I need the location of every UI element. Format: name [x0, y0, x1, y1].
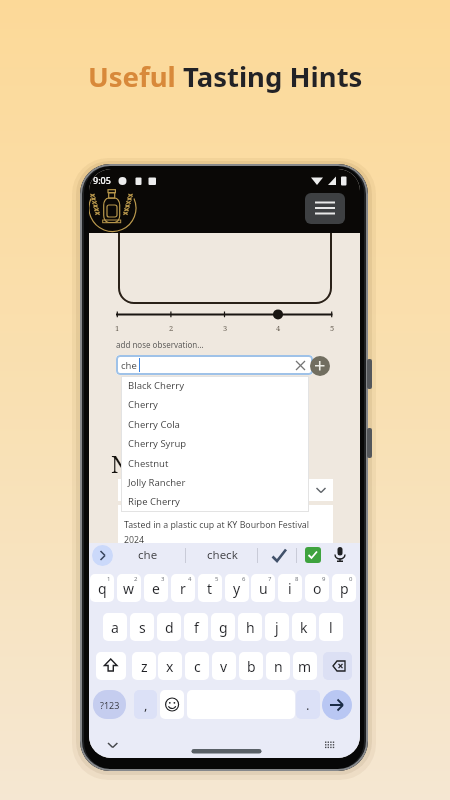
- button[interactable]: e: [144, 574, 168, 602]
- staticText: Jolly Rancher: [128, 476, 186, 489]
- staticText: 1: [115, 323, 120, 333]
- button[interactable]: i: [278, 574, 302, 602]
- button[interactable]: f: [184, 613, 208, 641]
- staticText: 0: [349, 575, 353, 583]
- button[interactable]: r: [171, 574, 195, 602]
- staticText: h: [246, 618, 255, 637]
- button[interactable]: g: [211, 613, 235, 641]
- staticText: .: [306, 696, 310, 714]
- button[interactable]: s: [130, 613, 154, 641]
- staticText: Chestnut: [128, 457, 169, 470]
- button[interactable]: Chestnut: [121, 454, 309, 473]
- button[interactable]: y: [225, 574, 249, 602]
- button[interactable]: Jolly Rancher: [121, 473, 309, 492]
- button[interactable]: c: [185, 652, 209, 680]
- staticText: v: [220, 657, 228, 676]
- staticText: k: [300, 618, 308, 637]
- button[interactable]: [160, 690, 184, 719]
- button[interactable]: Ripe Cherry: [121, 492, 309, 511]
- button[interactable]: che: [116, 355, 313, 375]
- staticText: l: [329, 618, 333, 637]
- button[interactable]: [322, 690, 352, 720]
- button[interactable]: .: [296, 690, 320, 719]
- staticText: 4: [188, 575, 192, 583]
- button[interactable]: q: [90, 574, 114, 602]
- staticText: i: [288, 579, 292, 598]
- staticText: m: [298, 657, 312, 676]
- button[interactable]: [92, 545, 113, 566]
- button[interactable]: v: [212, 652, 236, 680]
- staticText: Tasted in a plastic cup at KY Bourbon Fe…: [124, 519, 310, 531]
- button[interactable]: Black Cherry: [121, 376, 309, 395]
- button[interactable]: a: [103, 613, 127, 641]
- staticText: 4: [276, 323, 281, 333]
- staticText: 2024: [124, 534, 145, 546]
- button[interactable]: Cherry Syrup: [121, 434, 309, 453]
- staticText: 1: [107, 575, 111, 583]
- button[interactable]: Cherry Cola: [121, 415, 309, 434]
- staticText: w: [123, 579, 135, 598]
- button[interactable]: [323, 652, 352, 680]
- staticText: Black Cherry: [128, 379, 184, 392]
- button[interactable]: ,: [134, 690, 157, 719]
- staticText: che: [138, 547, 158, 563]
- staticText: c: [194, 657, 201, 676]
- staticText: ,: [144, 696, 148, 714]
- button[interactable]: x: [158, 652, 182, 680]
- staticText: p: [340, 579, 349, 598]
- staticText: N: [111, 448, 129, 474]
- button[interactable]: b: [239, 652, 263, 680]
- staticText: Cherry Syrup: [128, 437, 187, 450]
- button[interactable]: p: [332, 574, 356, 602]
- button[interactable]: j: [265, 613, 289, 641]
- staticText: check: [207, 547, 238, 563]
- staticText: Cherry Cola: [128, 418, 180, 431]
- staticText: q: [98, 579, 107, 598]
- button[interactable]: ?123: [93, 690, 126, 719]
- button[interactable]: o: [305, 574, 329, 602]
- staticText: 3: [161, 575, 165, 583]
- staticText: x: [166, 657, 174, 676]
- staticText: 2: [134, 575, 138, 583]
- button[interactable]: [305, 193, 345, 224]
- staticText: n: [274, 657, 283, 676]
- staticText: Useful: [88, 58, 183, 95]
- button[interactable]: [118, 479, 333, 501]
- staticText: add nose observation...: [116, 339, 204, 350]
- staticText: 6: [242, 575, 246, 583]
- button[interactable]: u: [251, 574, 275, 602]
- staticText: Cherry: [128, 398, 158, 411]
- staticText: s: [139, 618, 146, 637]
- staticText: o: [313, 579, 322, 598]
- button[interactable]: m: [293, 652, 317, 680]
- button[interactable]: Cherry: [121, 395, 309, 414]
- button[interactable]: [96, 652, 126, 680]
- button[interactable]: t: [198, 574, 222, 602]
- staticText: 8: [295, 575, 299, 583]
- button[interactable]: h: [238, 613, 262, 641]
- button[interactable]: d: [157, 613, 181, 641]
- button[interactable]: k: [292, 613, 316, 641]
- staticText: 5: [215, 575, 219, 583]
- staticText: t: [207, 579, 213, 598]
- staticText: z: [141, 657, 148, 676]
- staticText: d: [165, 618, 174, 637]
- button[interactable]: w: [117, 574, 141, 602]
- staticText: j: [275, 618, 279, 637]
- staticText: 7: [268, 575, 272, 583]
- staticText: r: [180, 579, 186, 598]
- staticText: Ripe Cherry: [128, 495, 180, 508]
- staticText: Tasting Hints: [183, 58, 363, 95]
- staticText: e: [152, 579, 160, 598]
- button[interactable]: [310, 356, 330, 376]
- staticText: a: [111, 618, 119, 637]
- staticText: che: [121, 359, 137, 372]
- staticText: g: [219, 618, 228, 637]
- staticText: 9:05: [93, 174, 111, 186]
- button[interactable]: n: [266, 652, 290, 680]
- button[interactable]: z: [132, 652, 156, 680]
- staticText: y: [233, 579, 241, 598]
- staticText: 5: [330, 323, 335, 333]
- button[interactable]: l: [319, 613, 343, 641]
